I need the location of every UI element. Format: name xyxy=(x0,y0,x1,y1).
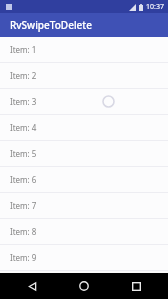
button[interactable]: Item: 9 xyxy=(0,245,168,270)
staticText: Item: 1 xyxy=(10,44,37,55)
button[interactable]: RvSwipeToDelete xyxy=(0,13,168,37)
button[interactable]: Item: 5 xyxy=(0,141,168,166)
staticText: Item: 3 xyxy=(10,96,37,107)
button[interactable]: Item: 6 xyxy=(0,167,168,192)
staticText: Item: 4 xyxy=(10,122,37,133)
staticText: Item: 6 xyxy=(10,174,37,185)
button[interactable]: Item: 3 xyxy=(0,89,168,114)
staticText: 10:37 xyxy=(146,2,164,12)
button[interactable]: Item: 1 xyxy=(0,37,168,62)
staticText: Item: 7 xyxy=(10,200,37,211)
button[interactable]: Back xyxy=(12,273,52,299)
staticText: Item: 5 xyxy=(10,148,37,159)
staticText: Item: 9 xyxy=(10,252,37,263)
button[interactable]: Recent apps xyxy=(116,273,156,299)
button[interactable]: Item: 2 xyxy=(0,63,168,88)
button[interactable]: Home xyxy=(64,273,104,299)
staticText: RvSwipeToDelete xyxy=(10,18,92,32)
staticText: Item: 8 xyxy=(10,226,37,237)
button[interactable]: Item: 7 xyxy=(0,193,168,218)
button[interactable]: Item: 8 xyxy=(0,219,168,244)
button[interactable]: Item: 4 xyxy=(0,115,168,140)
staticText: Item: 2 xyxy=(10,70,37,81)
